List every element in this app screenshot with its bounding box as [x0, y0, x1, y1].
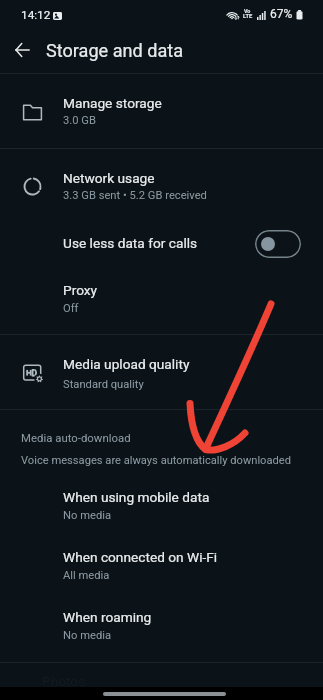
button[interactable]: When using mobile data	[0, 472, 323, 532]
staticText: Voice messages are always automatically …	[21, 454, 292, 467]
staticText: Media auto-download	[21, 431, 131, 444]
button[interactable]: Use less data for calls	[0, 214, 323, 274]
staticText: Off	[63, 302, 79, 315]
staticText: 3.0 GB	[63, 114, 96, 127]
staticText: 67%	[270, 7, 293, 21]
staticText: LTE	[243, 13, 253, 20]
button[interactable]: When connected on Wi-Fi	[0, 532, 323, 592]
staticText: No media	[63, 509, 111, 522]
staticText: Photos	[42, 673, 86, 689]
staticText: Vo	[244, 8, 251, 14]
button[interactable]: Proxy	[0, 274, 323, 334]
button[interactable]: Network usage	[0, 149, 323, 214]
staticText: Use less data for calls	[63, 235, 198, 251]
staticText: 3.3 GB sent • 5.2 GB received	[63, 189, 207, 202]
staticText: 14:12	[21, 8, 51, 22]
button[interactable]: Media upload quality	[0, 335, 323, 409]
staticText: No media	[63, 629, 111, 642]
staticText: All media	[63, 569, 110, 582]
staticText: When connected on Wi-Fi	[63, 549, 218, 565]
staticText: When using mobile data	[63, 489, 210, 505]
staticText: Network usage	[63, 170, 155, 186]
staticText: Proxy	[63, 282, 98, 298]
staticText: Manage storage	[63, 95, 162, 111]
staticText: Standard quality	[63, 378, 144, 391]
button[interactable]: Use less data for calls	[255, 230, 301, 258]
staticText: Storage and data	[46, 40, 184, 61]
button[interactable]: Back	[8, 35, 37, 64]
button[interactable]: Manage storage	[0, 74, 323, 148]
staticText: Media upload quality	[63, 356, 190, 372]
staticText: When roaming	[63, 609, 152, 625]
button[interactable]: When roaming	[0, 592, 323, 652]
